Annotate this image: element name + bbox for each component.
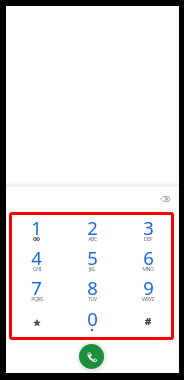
button[interactable] [9, 303, 64, 334]
staticText: TUV [88, 295, 97, 302]
button[interactable]: 1 [9, 212, 64, 242]
button[interactable]: 3 [120, 212, 176, 242]
button[interactable]: 8 [64, 272, 120, 303]
staticText: PQRS [31, 295, 43, 302]
staticText: 5 [87, 245, 98, 270]
staticText: 4 [31, 245, 42, 270]
button[interactable] [120, 303, 176, 334]
button[interactable]: 5 [64, 242, 120, 272]
staticText: DEF [144, 235, 152, 242]
staticText: 8 [87, 275, 98, 300]
button[interactable]: 7 [9, 272, 64, 303]
staticText: 2 [87, 215, 98, 240]
button[interactable]: 4 [9, 242, 64, 272]
button[interactable]: 2 [64, 212, 120, 242]
button[interactable]: 6 [120, 242, 176, 272]
staticText: 7 [31, 275, 42, 300]
button[interactable]: Backspace [154, 188, 176, 210]
staticText: WXYZ [142, 295, 154, 302]
staticText: 3 [143, 215, 154, 240]
staticText: 6 [143, 245, 154, 270]
staticText: 0 [87, 306, 98, 331]
staticText: ABC [88, 235, 97, 242]
staticText: 9 [143, 275, 154, 300]
staticText: 1 [31, 215, 42, 240]
button[interactable]: 9 [120, 272, 176, 303]
staticText: MNO [142, 265, 154, 272]
button[interactable]: 0 [64, 303, 120, 334]
staticText: JKL [89, 265, 95, 272]
button[interactable]: Call [79, 344, 104, 369]
staticText: GHI [33, 265, 41, 272]
